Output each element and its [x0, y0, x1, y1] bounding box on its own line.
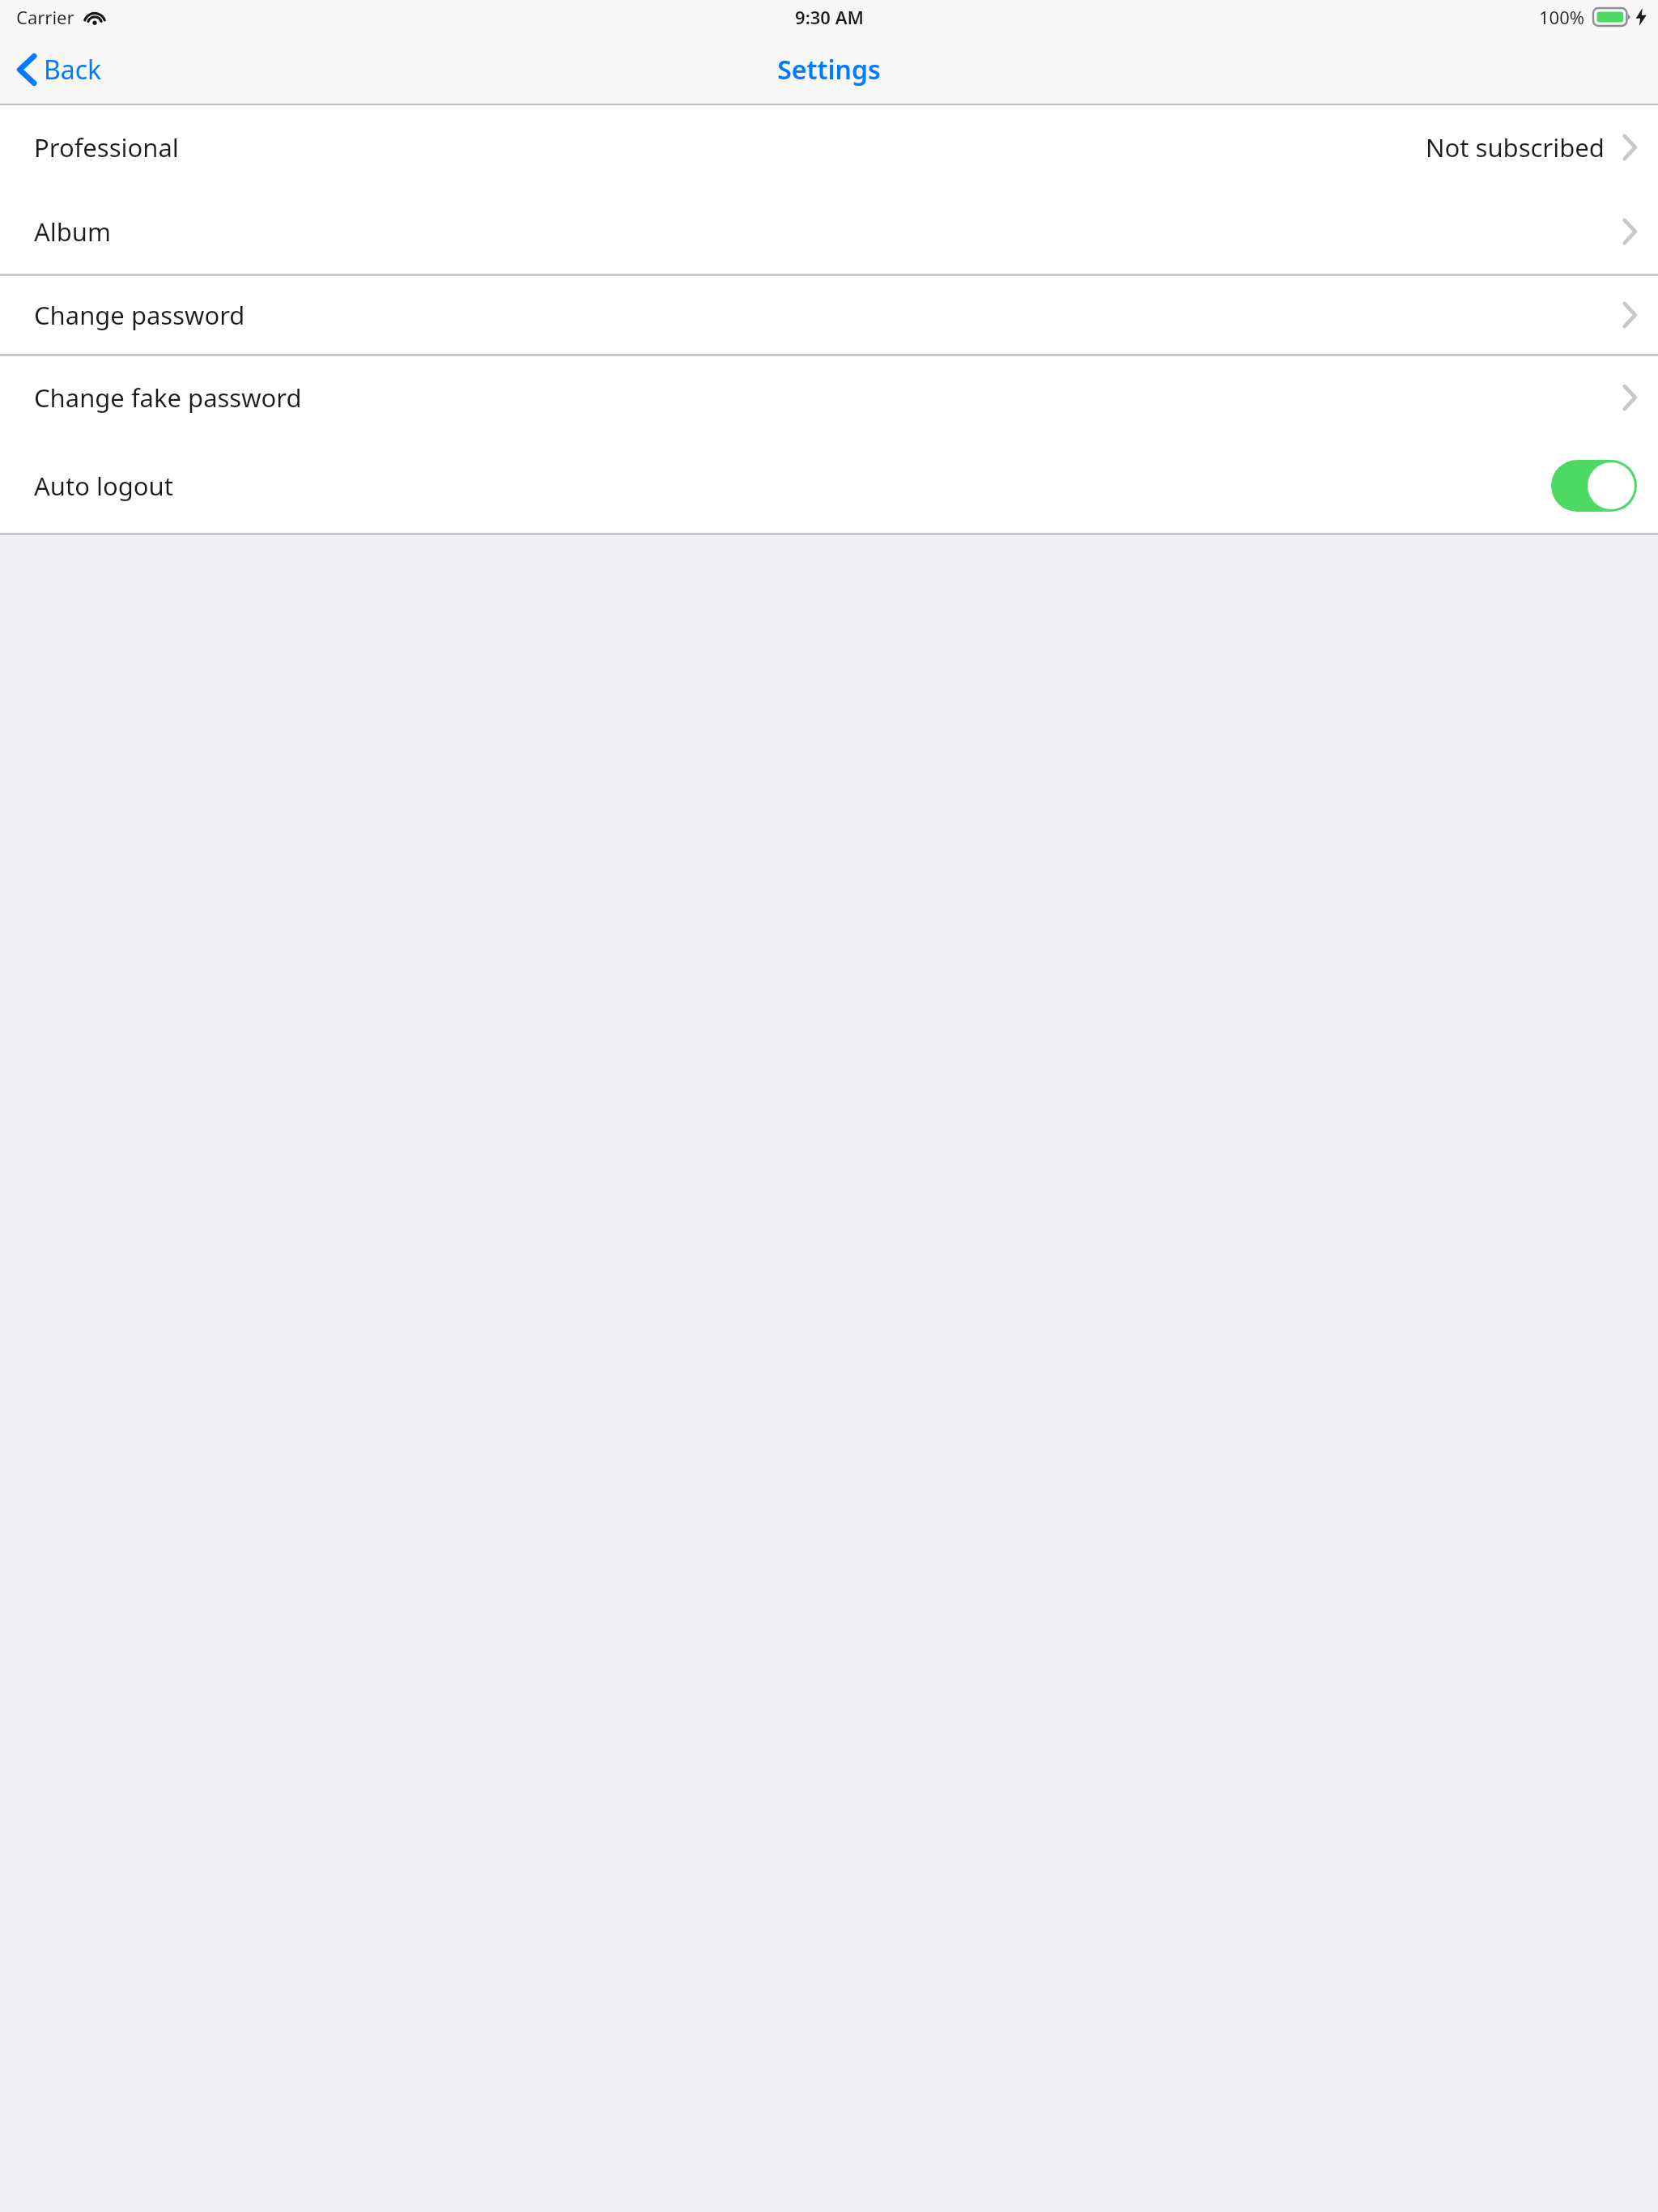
- staticText: Professional: [34, 130, 179, 164]
- button[interactable]: Back: [0, 34, 121, 105]
- button[interactable]: Auto logout toggle: [1551, 460, 1637, 512]
- staticText: 100%: [1539, 5, 1585, 29]
- staticText: Back: [44, 52, 102, 87]
- staticText: Not subscribed: [1426, 130, 1605, 164]
- button[interactable]: Change fake password: [0, 356, 1658, 439]
- button[interactable]: Change password: [0, 276, 1658, 354]
- staticText: Change password: [34, 298, 245, 332]
- button[interactable]: Professional: [0, 105, 1658, 189]
- staticText: Change fake password: [34, 381, 302, 415]
- staticText: Settings: [777, 52, 881, 87]
- button[interactable]: Album: [0, 189, 1658, 274]
- staticText: Album: [34, 215, 112, 249]
- staticText: 9:30 AM: [795, 5, 864, 29]
- staticText: Carrier: [16, 5, 74, 29]
- staticText: Auto logout: [34, 469, 173, 503]
